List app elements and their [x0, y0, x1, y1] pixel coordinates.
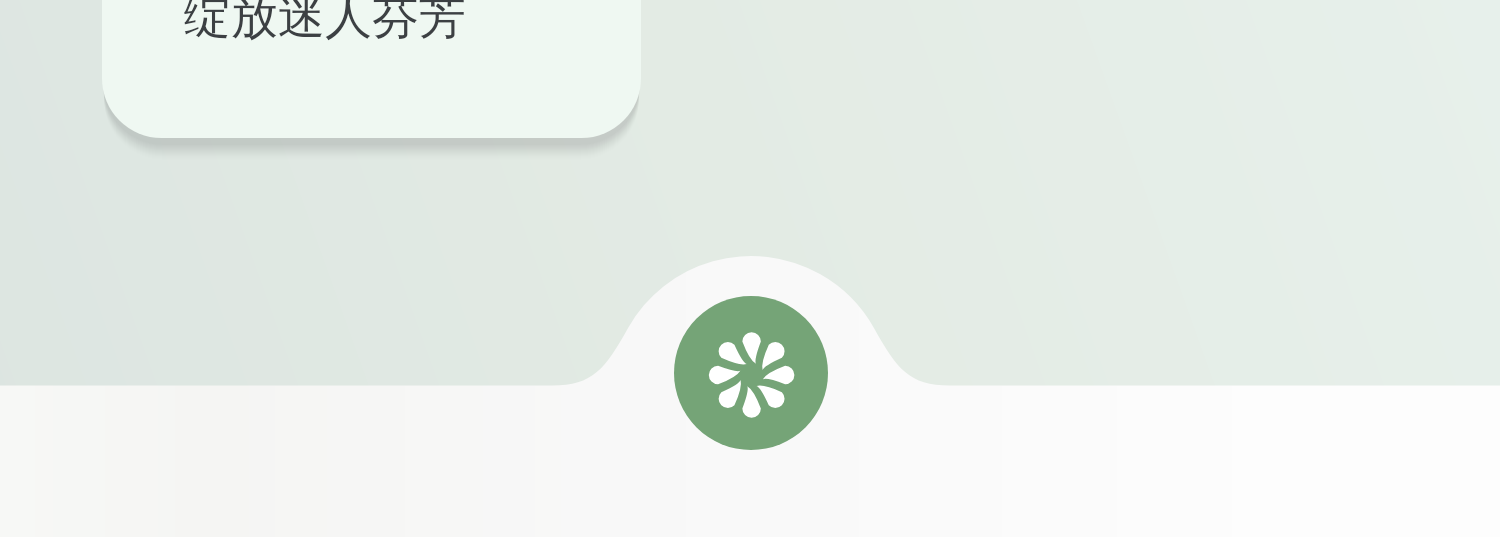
staticText: 绽放迷人芬芳 [184, 0, 466, 47]
button[interactable]: Add flower [674, 296, 828, 450]
button[interactable] [0, 386, 1500, 537]
button[interactable]: 绽放迷人芬芳 [102, 0, 641, 138]
